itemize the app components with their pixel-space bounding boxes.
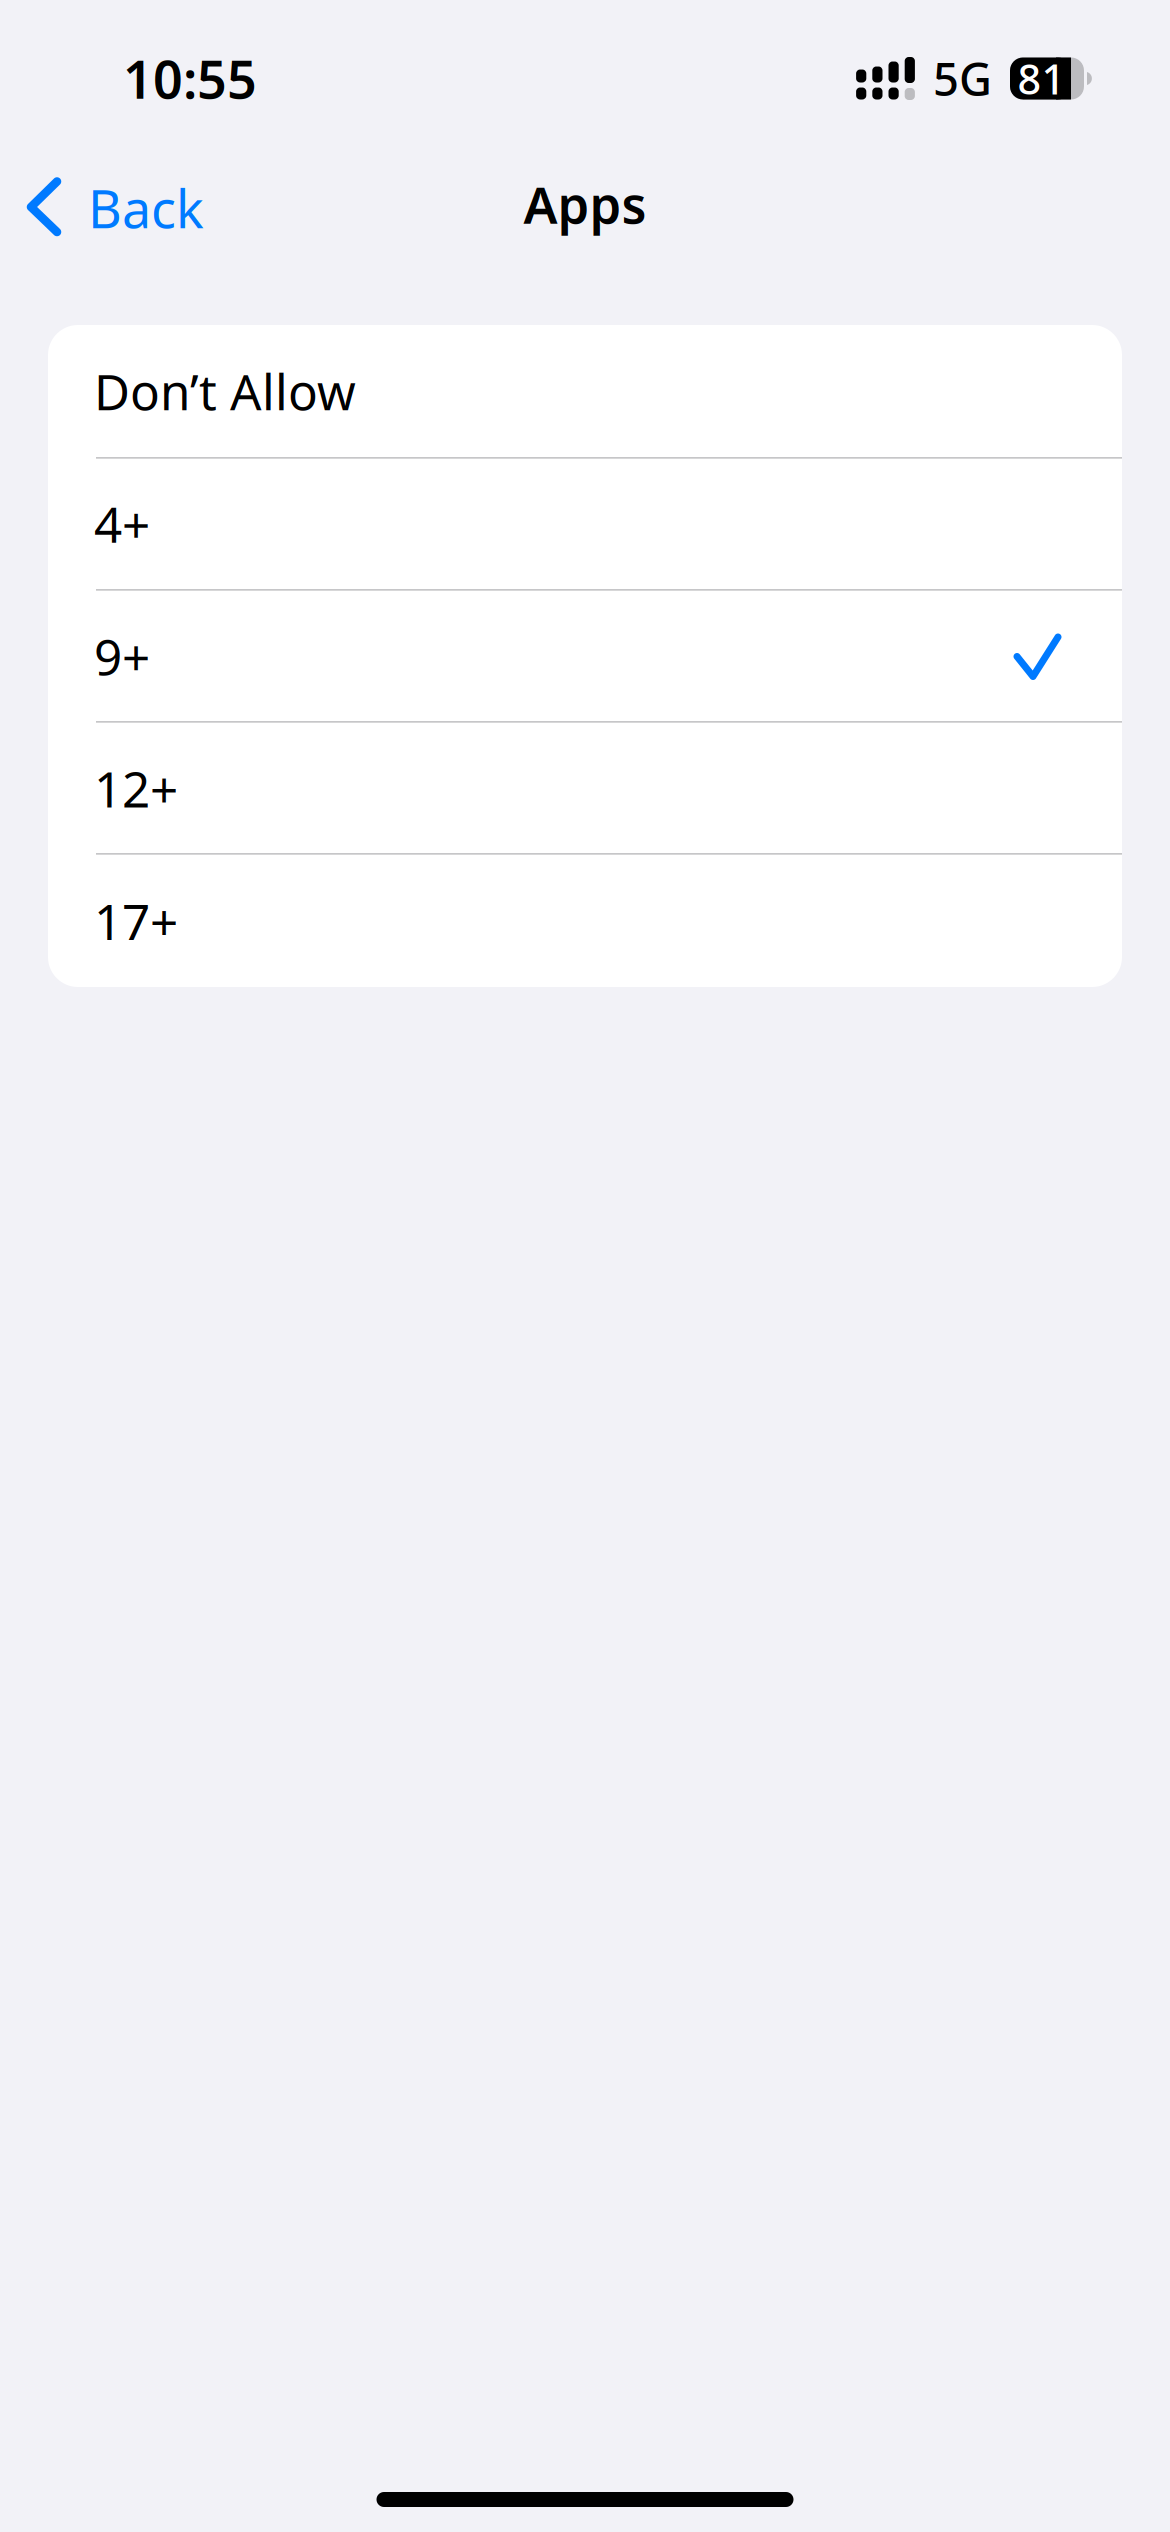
- staticText: Apps: [523, 170, 646, 238]
- staticText: Back: [88, 173, 204, 243]
- button[interactable]: Don’t Allow: [48, 325, 1122, 457]
- button[interactable]: 4+: [48, 457, 1122, 590]
- staticText: 4+: [94, 491, 150, 556]
- button[interactable]: Back: [0, 156, 228, 266]
- staticText: Don’t Allow: [94, 358, 356, 424]
- staticText: 17+: [94, 888, 178, 953]
- button[interactable]: 9+: [48, 590, 1122, 722]
- button[interactable]: 17+: [48, 855, 1122, 987]
- staticText: 10:55: [123, 44, 257, 113]
- staticText: 5G: [933, 48, 992, 109]
- staticText: 12+: [94, 756, 178, 821]
- button[interactable]: 12+: [48, 722, 1122, 855]
- staticText: 9+: [94, 623, 150, 689]
- staticText: 81: [1017, 51, 1065, 106]
